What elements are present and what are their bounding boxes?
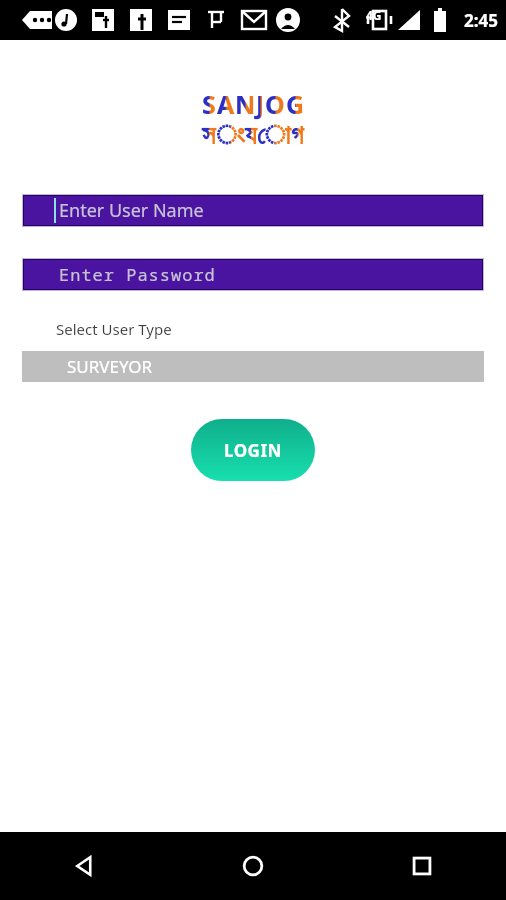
staticText: SURVEYOR xyxy=(67,355,153,378)
staticText: A xyxy=(217,87,235,121)
staticText: N xyxy=(235,87,256,121)
button[interactable]: SURVEYOR xyxy=(22,351,484,382)
button[interactable]: LOGIN xyxy=(191,419,315,481)
staticText: 2:45 xyxy=(464,9,498,32)
staticText: স xyxy=(202,123,216,149)
button[interactable]: Recent apps xyxy=(337,832,506,900)
staticText: S xyxy=(202,87,217,121)
staticText: Select User Type xyxy=(56,319,172,339)
staticText: J xyxy=(256,87,265,121)
staticText: O xyxy=(265,87,286,121)
button[interactable]: Enter Password xyxy=(24,260,482,289)
button[interactable]: Enter User Name xyxy=(24,196,482,225)
staticText: ো xyxy=(257,123,291,149)
staticText: ং xyxy=(216,123,245,149)
staticText: 4G xyxy=(366,7,382,23)
staticText: Enter Password xyxy=(59,263,216,286)
button[interactable]: Back xyxy=(0,832,168,900)
staticText: Enter User Name xyxy=(59,198,204,223)
staticText: য xyxy=(245,123,257,149)
staticText: G xyxy=(286,87,305,121)
button[interactable]: Home xyxy=(168,832,337,900)
staticText: গ xyxy=(291,123,304,149)
staticText: LOGIN xyxy=(224,439,282,462)
